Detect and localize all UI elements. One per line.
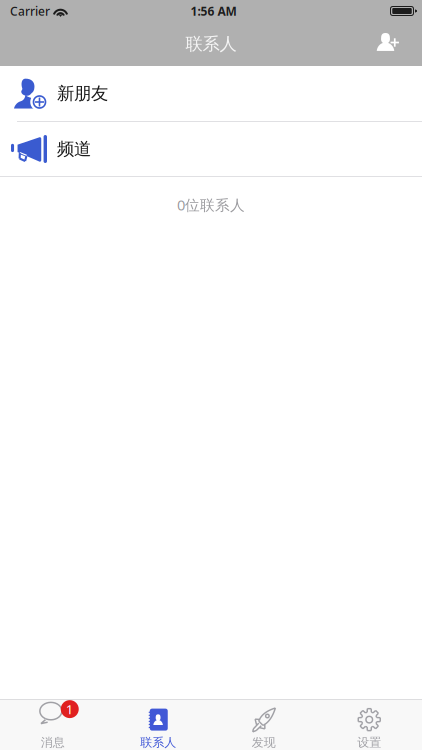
button[interactable]: Add contact <box>366 22 410 66</box>
button[interactable]: 1 <box>0 698 105 750</box>
staticText: 设置 <box>357 735 381 750</box>
staticText: 发现 <box>252 735 276 750</box>
button[interactable]: 联系人 <box>105 698 211 750</box>
staticText: 1 <box>66 700 74 718</box>
staticText: 联系人 <box>185 33 236 55</box>
button[interactable]: 新朋友 <box>0 66 422 122</box>
staticText: Carrier <box>10 3 50 19</box>
button[interactable]: 发现 <box>211 698 316 750</box>
button[interactable]: 频道 <box>0 122 422 177</box>
staticText: 联系人 <box>140 735 176 750</box>
staticText: 1:56 AM <box>190 3 236 19</box>
staticText: 消息 <box>41 735 65 750</box>
button[interactable]: 设置 <box>316 698 422 750</box>
staticText: 新朋友 <box>57 83 108 104</box>
staticText: 频道 <box>57 138 91 160</box>
staticText: 0位联系人 <box>177 195 245 214</box>
